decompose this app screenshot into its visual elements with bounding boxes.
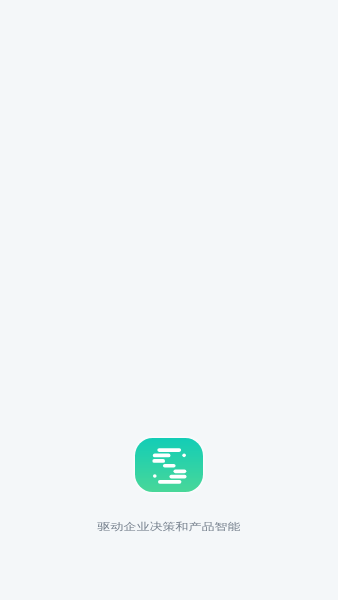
staticText: 驱动企业决策和产品智能 (0, 520, 338, 532)
other: App logo (135, 438, 203, 492)
